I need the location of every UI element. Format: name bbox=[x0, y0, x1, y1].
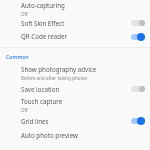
staticText: Soft Skin Effect bbox=[21, 19, 65, 27]
button[interactable]: Auto-capturing bbox=[0, 0, 150, 16]
button[interactable]: Toggle on bbox=[130, 32, 145, 41]
button[interactable]: Toggle off bbox=[130, 84, 145, 93]
button[interactable]: Save location bbox=[0, 81, 150, 96]
staticText: Common bbox=[6, 53, 29, 60]
staticText: Before and after taking photos bbox=[21, 75, 88, 81]
button[interactable]: Toggle on bbox=[130, 116, 145, 125]
staticText: Grid lines bbox=[21, 117, 49, 125]
button[interactable]: Show photography advice bbox=[0, 64, 150, 81]
staticText: Auto photo preview bbox=[21, 131, 78, 139]
staticText: Off bbox=[21, 107, 28, 113]
staticText: Off bbox=[21, 11, 28, 17]
button[interactable]: Toggle off bbox=[130, 18, 145, 27]
staticText: Save location bbox=[21, 85, 60, 93]
button[interactable]: Auto photo preview bbox=[0, 128, 150, 142]
button[interactable]: Soft Skin Effect bbox=[0, 16, 150, 29]
button[interactable]: Touch capture bbox=[0, 96, 150, 113]
button[interactable]: Grid lines bbox=[0, 113, 150, 128]
button[interactable]: QR Code reader bbox=[0, 29, 150, 43]
staticText: Touch capture bbox=[21, 97, 63, 105]
staticText: Show photography advice bbox=[21, 65, 97, 73]
staticText: QR Code reader bbox=[21, 32, 68, 40]
staticText: Auto-capturing bbox=[21, 1, 65, 9]
